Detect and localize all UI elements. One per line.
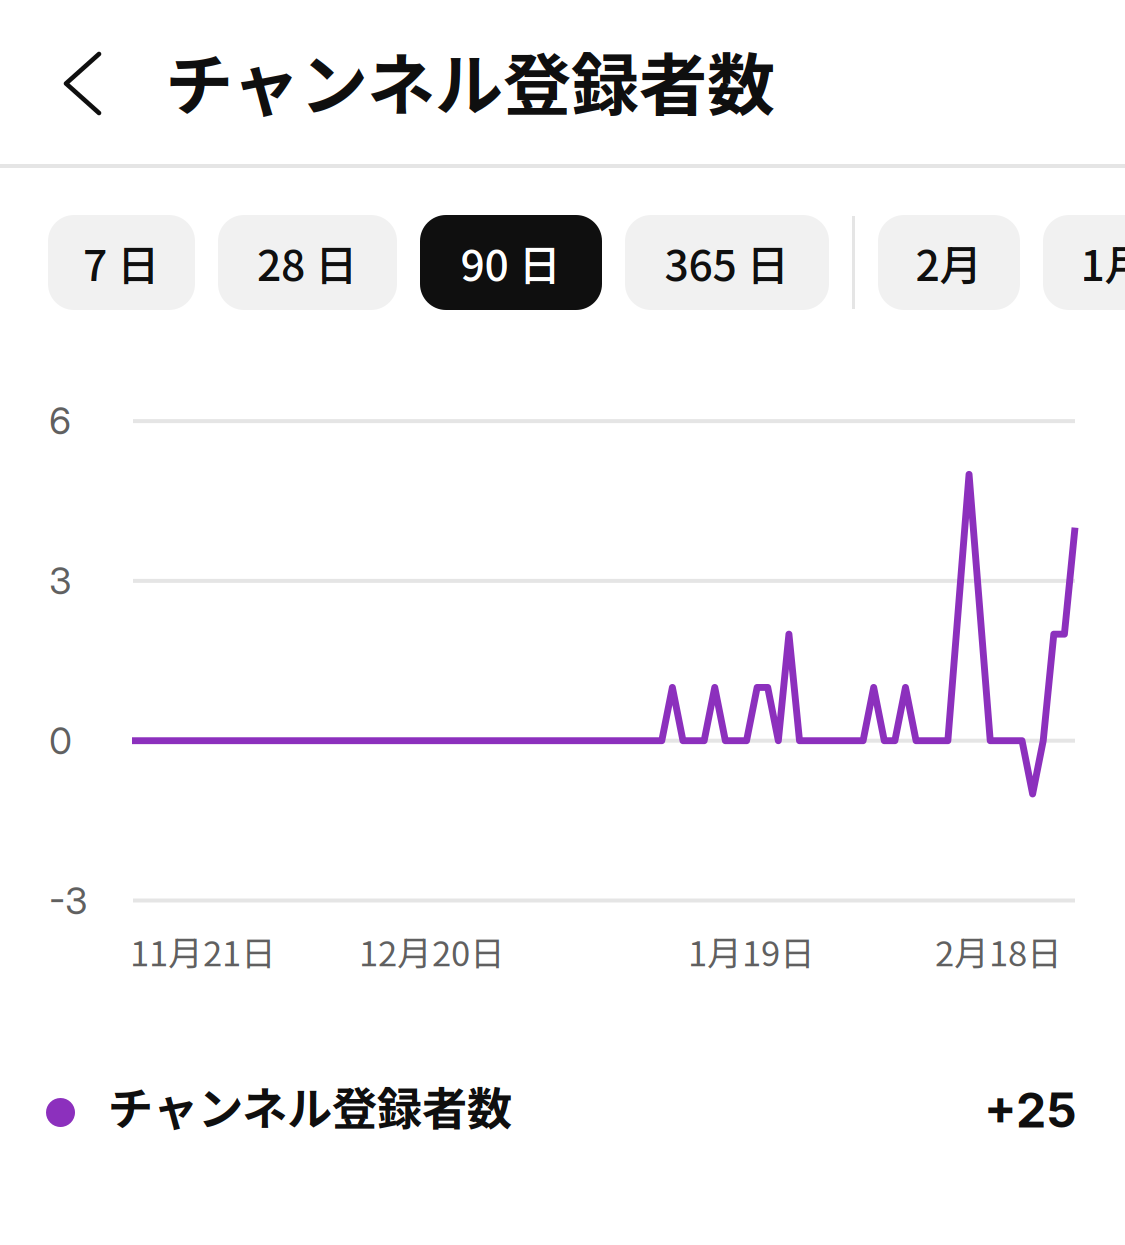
staticText: 7 日 bbox=[83, 232, 160, 293]
staticText: 12月20日 bbox=[359, 926, 505, 976]
staticText: 0 bbox=[49, 718, 72, 763]
staticText: 2月18日 bbox=[935, 926, 1062, 976]
staticText: 365 日 bbox=[664, 232, 789, 293]
staticText: 6 bbox=[49, 398, 71, 443]
button[interactable]: 90 日 bbox=[420, 215, 602, 310]
button[interactable]: 7 日 bbox=[48, 215, 195, 310]
button[interactable]: 365 日 bbox=[625, 215, 829, 310]
staticText: +25 bbox=[984, 1081, 1077, 1139]
staticText: 90 日 bbox=[460, 232, 561, 293]
button[interactable]: 28 日 bbox=[218, 215, 397, 310]
button[interactable]: Back bbox=[0, 0, 132, 165]
staticText: 3 bbox=[49, 558, 72, 603]
staticText: 1月19日 bbox=[688, 926, 815, 976]
staticText: 11月21日 bbox=[130, 926, 276, 976]
button[interactable]: 1月 bbox=[1043, 215, 1125, 310]
staticText: -3 bbox=[49, 878, 88, 923]
staticText: 2月 bbox=[915, 232, 982, 293]
staticText: チャンネル登録者数 bbox=[165, 31, 775, 129]
staticText: チャンネル登録者数 bbox=[108, 1073, 512, 1139]
staticText: 28 日 bbox=[257, 232, 358, 293]
staticText: 1月 bbox=[1080, 232, 1125, 293]
button[interactable]: 2月 bbox=[878, 215, 1020, 310]
